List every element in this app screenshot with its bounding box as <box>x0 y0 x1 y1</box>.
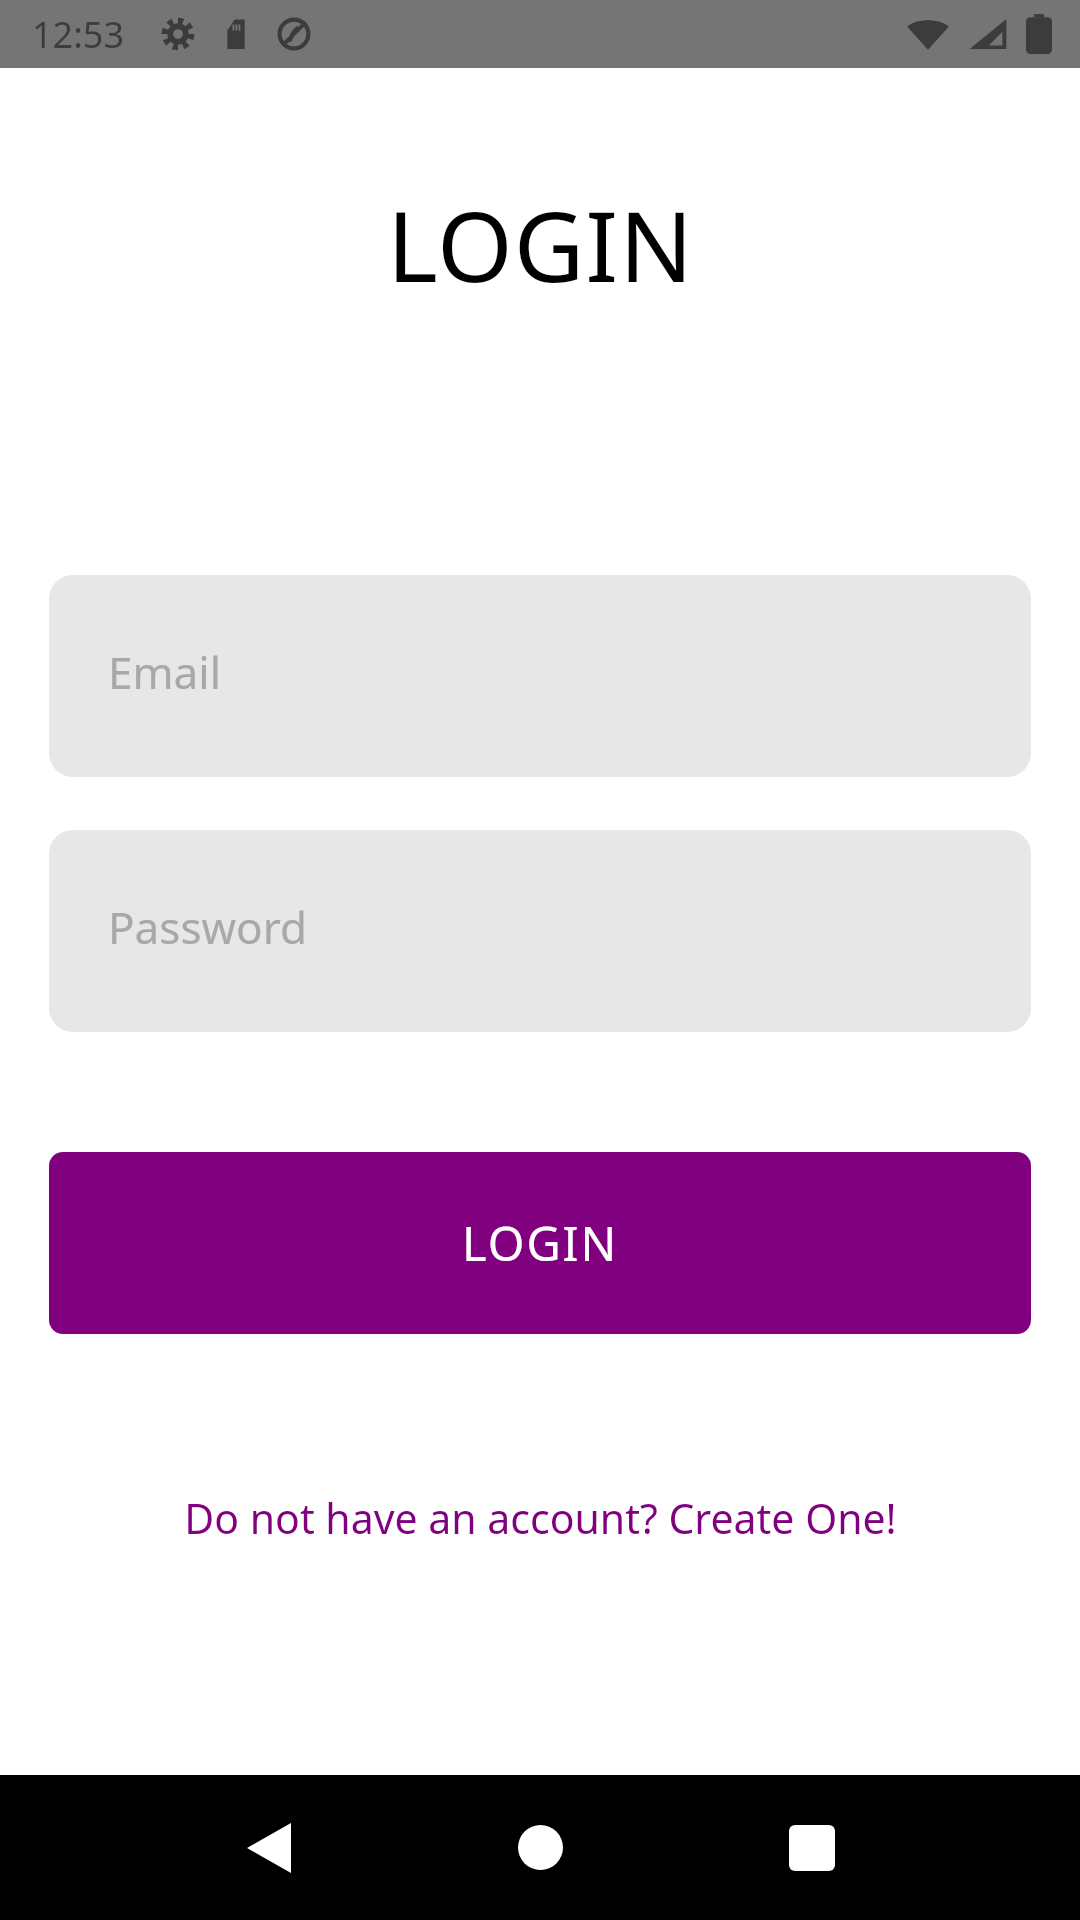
staticText: Email <box>108 642 221 702</box>
button[interactable]: Password <box>49 830 1031 1032</box>
button[interactable]: Do not have an account? Create One! <box>0 1490 1080 1546</box>
staticText: LOGIN <box>387 178 694 310</box>
button[interactable]: Home <box>468 1775 613 1920</box>
button[interactable]: LOGIN <box>49 1152 1031 1334</box>
button[interactable]: Email <box>49 575 1031 777</box>
button[interactable]: Recent apps <box>739 1775 884 1920</box>
button[interactable]: Back <box>196 1775 341 1920</box>
staticText: LOGIN <box>462 1211 619 1275</box>
staticText: Password <box>108 897 308 957</box>
staticText: Do not have an account? Create One! <box>184 1490 897 1546</box>
staticText: 12:53 <box>32 10 125 59</box>
